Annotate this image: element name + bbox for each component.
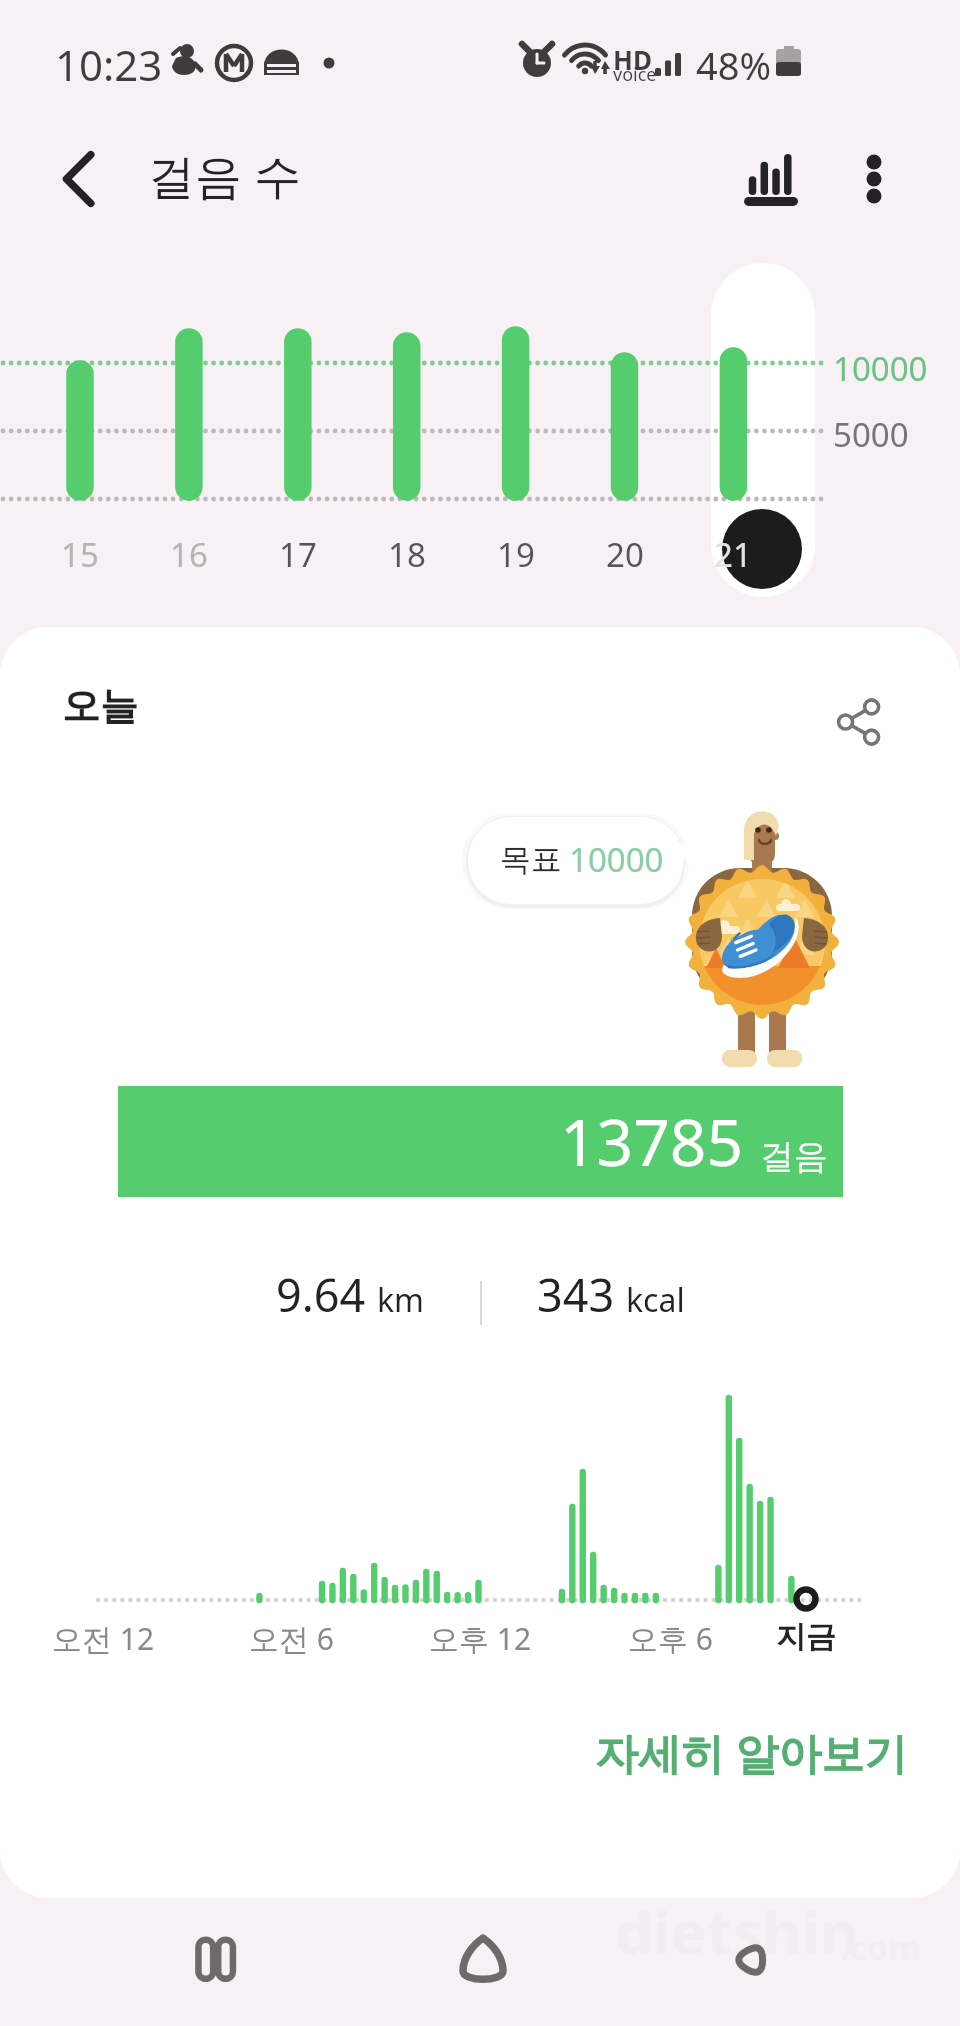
button[interactable]: Share — [818, 681, 900, 763]
staticText: 343 — [537, 1264, 615, 1325]
staticText: HD — [613, 42, 652, 77]
staticText: 15 — [61, 532, 99, 577]
staticText: 걸음 — [760, 1135, 828, 1178]
staticText: 오늘 — [62, 682, 138, 730]
staticText: 10000 — [569, 837, 664, 882]
staticText: 16 — [170, 532, 208, 577]
button[interactable]: 자세히 알아보기 — [581, 1713, 922, 1792]
staticText: 자세히 알아보기 — [595, 1723, 908, 1782]
button[interactable]: Chart — [735, 143, 807, 215]
staticText: 지금 — [776, 1618, 836, 1656]
staticText: voice — [613, 62, 657, 87]
staticText: 10000 — [833, 346, 928, 391]
staticText: 오전 12 — [52, 1618, 155, 1659]
button[interactable]: Home — [443, 1920, 523, 2000]
staticText: 17 — [279, 532, 317, 577]
staticText: dietshin — [615, 1890, 859, 1972]
button[interactable]: Back — [712, 1920, 792, 2000]
staticText: 20 — [606, 532, 644, 577]
staticText: 18 — [388, 532, 426, 577]
button[interactable]: Back — [44, 143, 116, 215]
staticText: km — [377, 1278, 425, 1322]
staticText: kcal — [626, 1278, 685, 1322]
staticText: 9.64 — [276, 1264, 366, 1325]
staticText: 걸음 수 — [148, 143, 302, 207]
staticText: 19 — [497, 532, 535, 577]
staticText: 5000 — [833, 412, 909, 457]
staticText: 21 — [714, 532, 752, 577]
staticText: 10:23 — [55, 36, 163, 93]
staticText: 목표 — [500, 840, 562, 879]
staticText: 오후 12 — [429, 1618, 532, 1659]
staticText: 13785 — [560, 1098, 744, 1185]
staticText: 오후 6 — [628, 1618, 713, 1659]
staticText: 48% — [696, 39, 772, 91]
button[interactable]: Recents — [175, 1920, 255, 2000]
staticText: 오전 6 — [249, 1618, 334, 1659]
button[interactable]: More options — [838, 143, 910, 215]
